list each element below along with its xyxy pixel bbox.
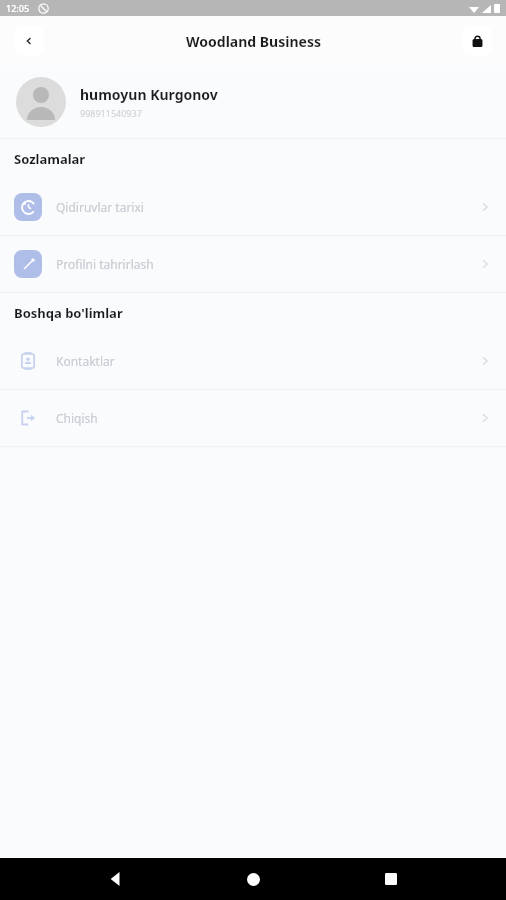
button[interactable]: Kontaktlar <box>0 333 506 389</box>
button[interactable]: humoyun Kurgonov <box>0 66 506 138</box>
button[interactable]: Qidiruvlar tarixi <box>0 179 506 235</box>
button[interactable]: Back <box>14 26 44 56</box>
staticText: 998911540937 <box>80 107 142 119</box>
button[interactable]: Recent apps <box>369 858 413 900</box>
staticText: humoyun Kurgonov <box>80 85 218 104</box>
staticText: Kontaktlar <box>56 353 478 369</box>
staticText: Chiqish <box>56 410 478 426</box>
staticText: Qidiruvlar tarixi <box>56 199 478 215</box>
button[interactable]: Chiqish <box>0 390 506 446</box>
staticText: Profilni tahrirlash <box>56 256 478 272</box>
button[interactable]: Home <box>231 858 275 900</box>
staticText: Boshqa bo'limlar <box>14 304 123 322</box>
staticText: Woodland Business <box>186 32 321 51</box>
staticText: 12:05 <box>6 2 30 14</box>
button[interactable]: Profilni tahrirlash <box>0 236 506 292</box>
button[interactable]: Shop <box>462 26 492 56</box>
staticText: Sozlamalar <box>14 150 86 168</box>
button[interactable]: Back <box>94 858 138 900</box>
